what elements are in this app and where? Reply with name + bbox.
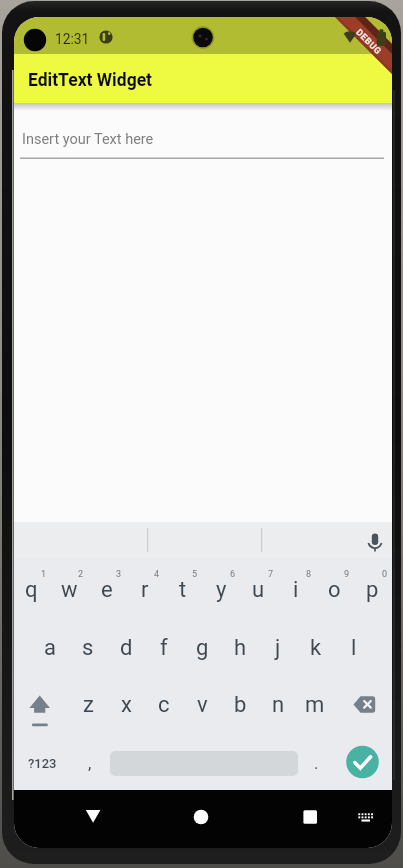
staticText: g [196, 635, 209, 661]
staticText: 4 [154, 569, 160, 580]
staticText: . [314, 753, 319, 773]
button[interactable] [356, 691, 386, 721]
button[interactable] [22, 691, 58, 721]
staticText: p [366, 577, 379, 603]
staticText: Insert your Text here [22, 131, 154, 148]
staticText: j [275, 635, 281, 661]
button[interactable] [352, 802, 382, 832]
button[interactable] [359, 526, 391, 558]
button[interactable]: t [164, 573, 202, 607]
staticText: z [83, 692, 94, 718]
staticText: i [293, 577, 299, 603]
button[interactable]: o [315, 573, 353, 607]
button[interactable]: x [107, 688, 145, 722]
button[interactable]: f [145, 631, 183, 665]
staticText: o [328, 577, 341, 603]
button[interactable]: j [259, 631, 297, 665]
staticText: 6 [230, 569, 236, 580]
button[interactable]: u [239, 573, 277, 607]
staticText: t [179, 577, 187, 603]
button[interactable]: z [69, 688, 107, 722]
button[interactable]: k [297, 631, 335, 665]
button[interactable]: i [277, 573, 315, 607]
button[interactable]: w [50, 573, 88, 607]
staticText: h [234, 635, 247, 661]
staticText: 7 [268, 569, 274, 580]
button[interactable]: q [14, 573, 50, 607]
button[interactable]: . [306, 751, 326, 775]
staticText: q [25, 577, 38, 603]
button[interactable]: e [88, 573, 126, 607]
button[interactable]: r [126, 573, 164, 607]
button[interactable] [290, 802, 330, 832]
button[interactable] [346, 746, 379, 779]
staticText: ?123 [28, 756, 57, 771]
button[interactable]: v [183, 688, 221, 722]
button[interactable]: h [221, 631, 259, 665]
staticText: 1 [41, 569, 47, 580]
button[interactable]: m [296, 688, 334, 722]
staticText: e [101, 577, 113, 603]
staticText: 5 [192, 569, 198, 580]
staticText: f [160, 635, 168, 661]
button[interactable] [74, 802, 114, 832]
staticText: m [305, 692, 325, 718]
staticText: 9 [344, 569, 350, 580]
staticText: y [216, 577, 227, 603]
button[interactable]: l [335, 631, 373, 665]
staticText: x [121, 692, 132, 718]
button[interactable]: b [221, 688, 259, 722]
staticText: s [82, 635, 94, 661]
button[interactable]: n [259, 688, 297, 722]
button[interactable]: ?123 [22, 754, 62, 772]
staticText: l [351, 635, 357, 661]
staticText: 8 [306, 569, 312, 580]
staticText: 2 [78, 569, 84, 580]
staticText: d [120, 635, 133, 661]
button[interactable]: , [80, 751, 100, 775]
staticText: u [252, 577, 265, 603]
staticText: n [272, 692, 285, 718]
staticText: EditText Widget [28, 70, 153, 91]
staticText: 0 [382, 569, 388, 580]
staticText: c [158, 692, 170, 718]
button[interactable]: s [69, 631, 107, 665]
button[interactable] [181, 802, 221, 832]
staticText: v [197, 692, 208, 718]
button[interactable]: y [202, 573, 240, 607]
staticText: a [44, 635, 56, 661]
staticText: w [61, 577, 78, 603]
button[interactable]: d [107, 631, 145, 665]
button[interactable]: c [145, 688, 183, 722]
staticText: 12:31 [55, 31, 90, 47]
staticText: b [234, 692, 247, 718]
staticText: DEBUG [353, 27, 384, 58]
staticText: , [88, 753, 92, 773]
staticText: r [141, 577, 149, 603]
staticText: 3 [116, 569, 122, 580]
button[interactable]: p [353, 573, 391, 607]
button[interactable]: g [183, 631, 221, 665]
staticText: k [310, 635, 322, 661]
button[interactable]: Insert your Text here [20, 117, 386, 161]
button[interactable]: a [31, 631, 69, 665]
